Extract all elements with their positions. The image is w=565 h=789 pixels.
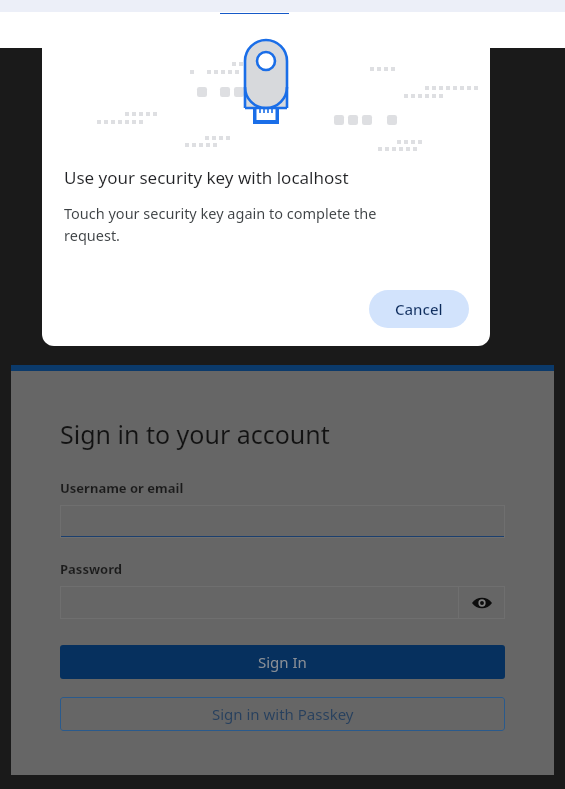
staticText: Touch your security key again to complet… <box>64 203 416 245</box>
button[interactable]: Show password <box>458 586 505 619</box>
button[interactable]: Cancel <box>369 290 469 328</box>
staticText: Sign in with Passkey <box>212 704 354 724</box>
button[interactable]: Sign in with Passkey <box>60 697 505 731</box>
staticText: Cancel <box>395 299 443 319</box>
staticText: Password <box>60 560 122 578</box>
staticText: Use your security key with localhost <box>64 166 349 189</box>
staticText: Sign in to your account <box>60 417 330 451</box>
button[interactable] <box>60 505 505 538</box>
staticText: Sign In <box>258 652 307 672</box>
staticText: Username or email <box>60 479 184 497</box>
button[interactable]: Sign In <box>60 645 505 679</box>
